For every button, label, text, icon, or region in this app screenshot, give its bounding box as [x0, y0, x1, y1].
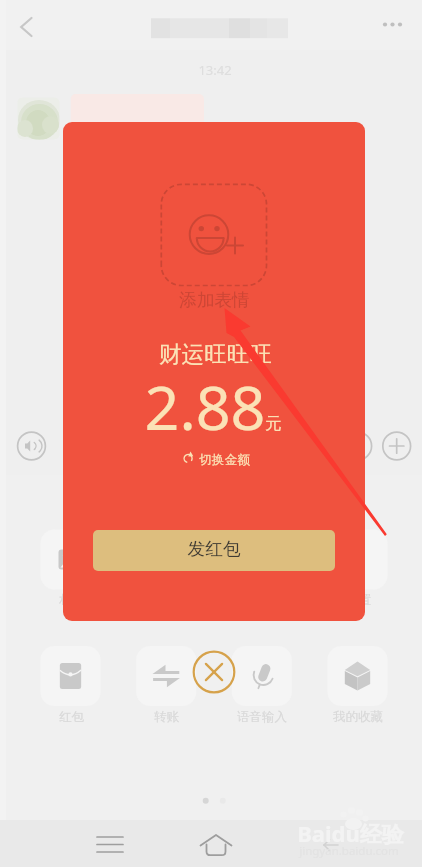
- button[interactable]: Menu: [97, 830, 127, 860]
- button[interactable]: Voice input: [18, 432, 46, 460]
- staticText: 位置: [346, 592, 371, 608]
- button[interactable]: Back: [8, 8, 46, 46]
- button[interactable]: [41, 646, 101, 728]
- staticText: 红包: [59, 709, 84, 725]
- staticText: 元: [265, 413, 282, 434]
- staticText: 财运旺旺旺: [159, 340, 272, 368]
- staticText: 发红包: [187, 538, 241, 560]
- staticText: 语音输入: [237, 709, 287, 725]
- button[interactable]: [161, 184, 267, 314]
- staticText: 13:42: [198, 61, 232, 79]
- staticText: 相册: [59, 592, 84, 608]
- button[interactable]: More options: [375, 8, 413, 38]
- staticText: 2.88: [144, 365, 266, 445]
- button[interactable]: [175, 447, 255, 473]
- button[interactable]: [136, 646, 196, 728]
- staticText: jingyan.baidu.com: [299, 843, 399, 859]
- staticText: 添加表情: [179, 289, 250, 311]
- staticText: Baidu经验: [297, 818, 404, 848]
- button[interactable]: Home: [201, 830, 231, 860]
- staticText: 我的收藏: [333, 709, 383, 725]
- staticText: 转账: [154, 709, 179, 725]
- button[interactable]: Back: [320, 830, 350, 860]
- button[interactable]: More functions: [383, 432, 411, 460]
- button[interactable]: [328, 646, 388, 728]
- button[interactable]: Close panel: [194, 652, 235, 693]
- button[interactable]: [232, 646, 292, 728]
- staticText: 切换金额: [199, 452, 250, 468]
- button[interactable]: [93, 530, 335, 571]
